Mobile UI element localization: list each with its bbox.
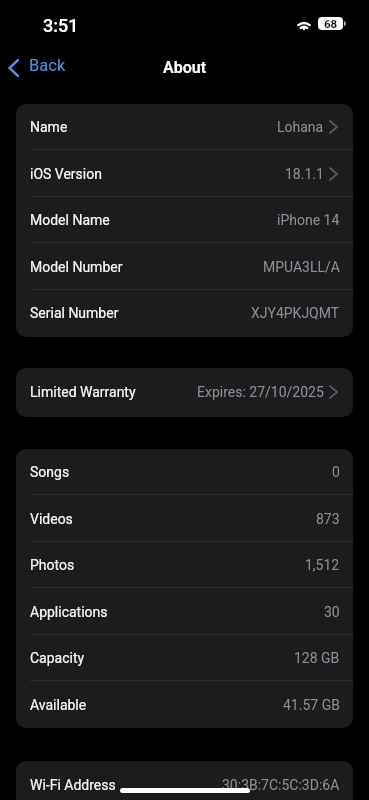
staticText: Capacity [30,650,85,666]
staticText: About [163,58,207,77]
button[interactable]: Applications [16,588,353,635]
staticText: iPhone 14 [277,212,340,228]
button[interactable]: Capacity [16,635,353,681]
staticText: Model Name [30,212,110,228]
button[interactable]: Videos [16,495,353,542]
button[interactable]: Songs [16,449,353,495]
staticText: 3:51 [43,15,79,36]
staticText: 128 GB [294,650,340,666]
staticText: 30:3B:7C:5C:3D:6A [222,777,340,793]
staticText: XJY4PKJQMT [251,305,340,321]
staticText: 30 [324,604,340,620]
staticText: 1,512 [305,557,340,573]
staticText: Expires: 27/10/2025 [197,384,324,400]
staticText: iOS Version [30,166,102,182]
staticText: Back [29,56,66,75]
staticText: 0 [332,464,340,480]
button[interactable]: Model Name [16,197,353,243]
staticText: Applications [30,604,108,620]
button[interactable]: Wi-Fi Address [16,761,353,800]
staticText: Songs [30,464,70,480]
button[interactable]: Back [0,53,76,82]
staticText: Lohana [277,119,324,135]
staticText: Photos [30,557,75,573]
staticText: Videos [30,511,73,527]
staticText: 68 [324,17,338,30]
button[interactable]: Name [16,104,353,150]
staticText: Wi-Fi Address [30,777,116,793]
staticText: Name [30,119,68,135]
button[interactable]: Model Number [16,243,353,290]
button[interactable]: Photos [16,542,353,588]
staticText: 18.1.1 [285,166,324,182]
staticText: 41.57 GB [283,697,340,713]
staticText: 873 [316,511,340,527]
staticText: MPUA3LL/A [263,259,340,275]
staticText: Limited Warranty [30,384,136,400]
staticText: Available [30,697,87,713]
button[interactable]: iOS Version [16,150,353,197]
button[interactable]: Serial Number [16,290,353,336]
staticText: Serial Number [30,305,119,321]
button[interactable]: Limited Warranty [16,368,353,416]
staticText: Model Number [30,259,123,275]
button[interactable]: Available [16,681,353,728]
